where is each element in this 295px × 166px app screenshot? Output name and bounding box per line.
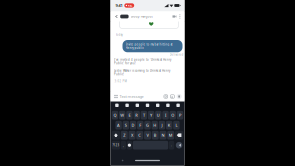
button[interactable]: E — [126, 111, 133, 119]
button[interactable]: Z — [121, 131, 128, 139]
staticText: M — [169, 132, 173, 138]
staticText: Text message — [119, 94, 143, 99]
button[interactable]: Emoji — [127, 141, 132, 149]
button[interactable]: , — [121, 141, 126, 149]
button[interactable]: B — [152, 131, 159, 139]
button[interactable]: Keyboard tool — [112, 101, 122, 109]
staticText: G — [146, 122, 149, 128]
staticText: A — [117, 122, 120, 128]
staticText: F — [139, 122, 141, 128]
button[interactable]: J — [159, 121, 165, 129]
button[interactable]: G — [144, 121, 151, 129]
staticText: E — [128, 112, 130, 118]
staticText: V — [146, 132, 148, 138]
button[interactable]: Camera — [162, 93, 169, 100]
staticText: W — [120, 112, 124, 118]
button[interactable]: . — [169, 141, 174, 149]
button[interactable]: Enter — [175, 141, 183, 149]
button[interactable]: Keyboard tool — [122, 101, 132, 109]
button[interactable]: Back — [113, 11, 120, 21]
staticText: B — [154, 132, 157, 138]
button[interactable]: Keyboard tool — [142, 101, 153, 109]
button[interactable]: C — [136, 131, 143, 139]
button[interactable]: X — [128, 131, 135, 139]
staticText: S — [125, 122, 127, 128]
staticText: P — [179, 112, 181, 118]
button[interactable]: Keyboard tool — [153, 101, 163, 109]
button[interactable]: P — [177, 111, 183, 119]
staticText: Z — [123, 132, 125, 138]
button[interactable]: I — [162, 111, 169, 119]
staticText: Invite people to my bar hitting at Henry… — [125, 43, 172, 50]
staticText: O — [171, 112, 174, 118]
button[interactable]: T — [141, 111, 147, 119]
button[interactable]: U — [155, 111, 161, 119]
button[interactable]: More options — [178, 11, 182, 21]
button[interactable]: Space — [133, 141, 168, 149]
staticText: Group Hangout — [131, 15, 153, 18]
button[interactable]: Keyboard tool — [163, 101, 173, 109]
staticText: 9:41 — [115, 3, 122, 8]
staticText: D — [132, 122, 135, 128]
button[interactable]: V — [144, 131, 151, 139]
staticText: C — [138, 132, 141, 138]
button[interactable]: D — [130, 121, 136, 129]
button[interactable]: Keyboard tool — [132, 101, 142, 109]
button[interactable]: L — [173, 121, 180, 129]
button[interactable]: Keyboard tool — [173, 101, 183, 109]
button[interactable]: Voice message — [176, 93, 182, 100]
staticText: U — [157, 112, 160, 118]
button[interactable]: Gallery — [169, 93, 176, 100]
button[interactable]: K — [166, 121, 172, 129]
staticText: I've invited 4 people to 'Drinks at Henr… — [114, 58, 171, 65]
button[interactable]: Q — [112, 111, 118, 119]
button[interactable]: A — [115, 121, 122, 129]
button[interactable]: Y — [148, 111, 154, 119]
button[interactable]: Video call — [171, 11, 178, 21]
staticText: REC — [128, 4, 133, 7]
button[interactable]: H — [151, 121, 158, 129]
staticText: Q — [113, 112, 116, 118]
staticText: I — [165, 112, 166, 118]
button[interactable]: S — [123, 121, 129, 129]
staticText: Delivered — [169, 53, 183, 56]
staticText: T — [143, 112, 145, 118]
staticText: H — [153, 122, 156, 128]
button[interactable]: F — [137, 121, 143, 129]
button[interactable]: Apps — [112, 93, 119, 100]
staticText: J — [161, 122, 162, 128]
button[interactable]: M — [167, 131, 174, 139]
button[interactable]: ?123 — [112, 141, 120, 149]
staticText: ?123 — [112, 143, 119, 147]
staticText: 3:02 PM — [114, 79, 126, 83]
button[interactable]: W — [119, 111, 125, 119]
staticText: N — [161, 132, 164, 138]
staticText: L — [175, 122, 177, 128]
staticText: . — [171, 143, 172, 147]
staticText: Y — [150, 112, 152, 118]
button[interactable]: R — [133, 111, 140, 119]
staticText: Today — [115, 33, 122, 36]
button[interactable]: Backspace — [175, 131, 183, 139]
staticText: X — [131, 132, 133, 138]
button[interactable]: Shift — [112, 131, 120, 139]
staticText: Leslie Walker is coming to Drinks at Hen… — [114, 69, 170, 76]
button[interactable]: N — [159, 131, 166, 139]
staticText: , — [123, 143, 124, 147]
staticText: R — [135, 112, 138, 118]
staticText: K — [168, 122, 171, 128]
button[interactable]: O — [170, 111, 176, 119]
